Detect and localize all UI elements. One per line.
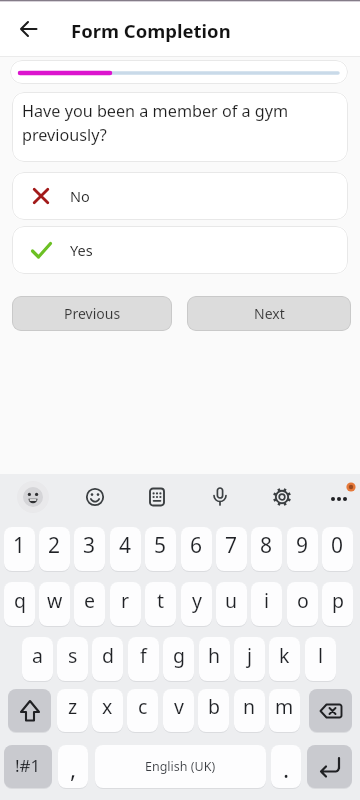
staticText: c <box>138 693 148 720</box>
button[interactable] <box>321 479 357 515</box>
button[interactable] <box>202 479 238 515</box>
staticText: o <box>297 587 309 614</box>
staticText: a <box>32 642 43 669</box>
button[interactable]: k <box>269 637 300 681</box>
button[interactable]: r <box>110 582 141 626</box>
button[interactable] <box>77 479 113 515</box>
staticText: 3 <box>83 531 96 560</box>
staticText: n <box>243 693 256 720</box>
staticText: y <box>192 587 202 614</box>
button[interactable]: Next <box>187 296 351 331</box>
button[interactable]: y <box>181 582 212 626</box>
button[interactable] <box>307 745 352 788</box>
staticText: v <box>174 693 184 720</box>
button[interactable]: 5 <box>145 527 176 571</box>
button[interactable]: a <box>22 637 53 681</box>
button[interactable] <box>139 479 175 515</box>
staticText: 6 <box>190 531 203 560</box>
button[interactable]: 9 <box>287 527 318 571</box>
staticText: s <box>68 642 78 669</box>
button[interactable]: Have you been a member of a gym previous… <box>12 92 348 162</box>
button[interactable]: o <box>287 582 318 626</box>
button[interactable]: i <box>251 582 282 626</box>
button[interactable]: v <box>163 689 194 732</box>
staticText: 0 <box>331 531 344 560</box>
staticText: Form Completion <box>71 18 231 43</box>
button[interactable]: n <box>234 689 265 732</box>
staticText: e <box>84 587 95 614</box>
staticText: 2 <box>48 531 61 560</box>
button[interactable]: . <box>271 745 301 788</box>
button[interactable]: d <box>92 637 123 681</box>
staticText: f <box>140 642 147 669</box>
button[interactable]: g <box>163 637 194 681</box>
button[interactable]: , <box>58 745 88 788</box>
button[interactable]: Previous <box>12 296 172 331</box>
button[interactable]: s <box>57 637 88 681</box>
staticText: d <box>102 642 114 669</box>
staticText: t <box>157 587 165 614</box>
staticText: m <box>275 693 294 720</box>
button[interactable]: q <box>4 582 35 626</box>
button[interactable]: u <box>216 582 247 626</box>
staticText: u <box>225 587 238 614</box>
staticText: , <box>70 753 77 784</box>
button[interactable]: Yes <box>12 226 348 274</box>
staticText: No <box>70 186 90 206</box>
staticText: h <box>208 642 221 669</box>
button[interactable]: h <box>199 637 230 681</box>
button[interactable] <box>309 689 352 732</box>
staticText: q <box>14 587 26 614</box>
button[interactable]: 2 <box>39 527 70 571</box>
button[interactable] <box>15 479 51 515</box>
button[interactable]: l <box>305 637 336 681</box>
button[interactable] <box>264 479 300 515</box>
staticText: English (UK) <box>145 758 216 775</box>
button[interactable] <box>10 10 48 48</box>
staticText: !#1 <box>15 754 41 777</box>
button[interactable]: m <box>269 689 300 732</box>
staticText: 7 <box>225 531 238 560</box>
button[interactable]: 4 <box>110 527 141 571</box>
staticText: Previous <box>64 304 121 323</box>
staticText: g <box>173 642 185 669</box>
button[interactable]: z <box>57 689 88 732</box>
button[interactable]: 6 <box>181 527 212 571</box>
button[interactable]: j <box>234 637 265 681</box>
button[interactable]: x <box>92 689 123 732</box>
button[interactable]: b <box>198 689 229 732</box>
button[interactable]: p <box>322 582 353 626</box>
button[interactable]: 8 <box>251 527 282 571</box>
staticText: j <box>247 642 253 669</box>
button[interactable] <box>8 689 51 732</box>
staticText: x <box>102 693 113 720</box>
staticText: k <box>279 642 290 669</box>
button[interactable]: t <box>145 582 176 626</box>
button[interactable]: f <box>128 637 159 681</box>
button[interactable]: No <box>12 172 348 220</box>
button[interactable]: 1 <box>4 527 35 571</box>
button[interactable]: !#1 <box>4 745 52 788</box>
staticText: z <box>68 693 78 720</box>
staticText: i <box>264 587 270 614</box>
staticText: l <box>318 642 324 669</box>
staticText: w <box>47 587 63 614</box>
staticText: Next <box>254 304 285 323</box>
staticText: 4 <box>119 531 132 560</box>
staticText: Yes <box>70 240 93 260</box>
button[interactable]: 0 <box>322 527 353 571</box>
button[interactable]: English (UK) <box>95 745 266 788</box>
staticText: 8 <box>260 531 273 560</box>
staticText: 9 <box>296 531 309 560</box>
staticText: Have you been a member of a gym previous… <box>22 100 289 146</box>
staticText: 5 <box>154 531 167 560</box>
button[interactable]: e <box>74 582 105 626</box>
staticText: . <box>283 753 290 784</box>
button[interactable]: w <box>39 582 70 626</box>
button[interactable]: c <box>127 689 158 732</box>
staticText: p <box>332 587 344 614</box>
button[interactable]: 7 <box>216 527 247 571</box>
staticText: 1 <box>13 531 26 560</box>
button[interactable]: 3 <box>74 527 105 571</box>
staticText: b <box>208 693 220 720</box>
